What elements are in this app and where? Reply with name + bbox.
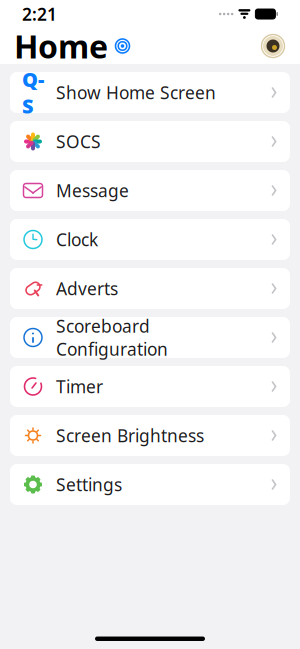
staticText: Screen Brightness — [56, 424, 204, 447]
staticText: Timer — [56, 375, 103, 398]
button[interactable]: Timer — [10, 366, 290, 407]
staticText: Scoreboard Configuration — [56, 314, 168, 360]
staticText: Adverts — [56, 277, 118, 300]
button[interactable]: Clock — [10, 219, 290, 260]
button[interactable]: Settings — [10, 464, 290, 505]
button[interactable]: Screen Brightness — [10, 415, 290, 456]
staticText: Home — [14, 25, 108, 67]
button[interactable]: Adverts — [10, 268, 290, 309]
button[interactable]: SOCS — [10, 121, 290, 162]
staticText: Settings — [56, 473, 122, 496]
staticText: Clock — [56, 228, 98, 251]
staticText: Show Home Screen — [56, 81, 216, 104]
button[interactable]: Profile — [260, 33, 286, 59]
staticText: QS — [22, 66, 44, 119]
button[interactable]: QS — [10, 72, 290, 113]
button[interactable]: Message — [10, 170, 290, 211]
button[interactable]: Scoreboard Configuration — [10, 317, 290, 358]
staticText: SOCS — [56, 130, 101, 153]
staticText: Message — [56, 179, 129, 202]
staticText: 2:21 — [22, 2, 57, 25]
